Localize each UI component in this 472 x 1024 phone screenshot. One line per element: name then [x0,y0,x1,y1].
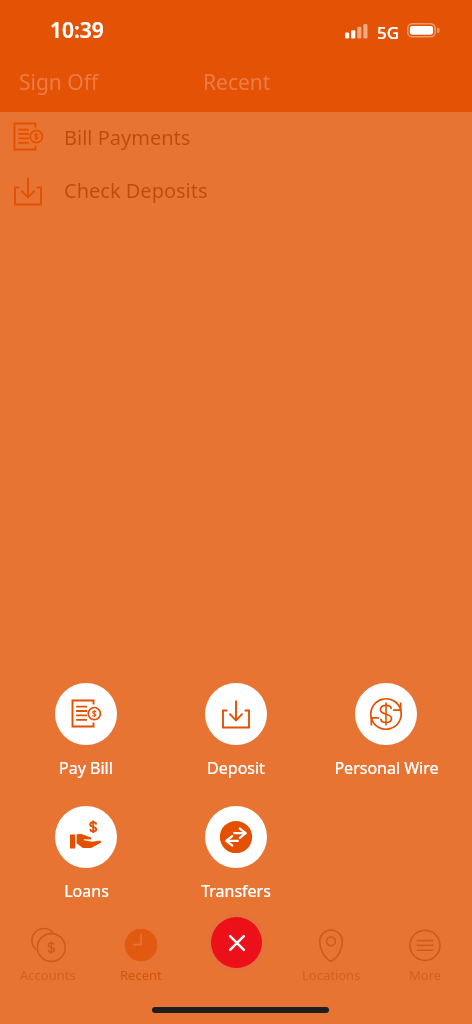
staticText: Check Deposits [64,177,208,204]
staticText: Personal Wire [334,757,439,779]
staticText: Loans [64,880,109,902]
button[interactable]: Personal Wire [311,683,461,779]
staticText: Bill Payments [64,124,191,151]
button[interactable]: Pay Bill [11,683,161,779]
staticText: 10:39 [50,16,104,45]
staticText: Transfers [201,880,271,902]
button[interactable]: Sign Off [0,62,160,102]
button[interactable]: Loans [11,806,161,902]
staticText: More [409,966,442,984]
button[interactable]: More [390,923,460,984]
staticText: Deposit [207,757,265,779]
staticText: Accounts [20,966,76,984]
staticText: Recent [203,68,271,97]
button[interactable]: Accounts [13,923,83,984]
button[interactable]: Locations [296,923,366,984]
staticText: Recent [120,966,162,984]
button[interactable]: Deposit [161,683,311,779]
button[interactable]: Check Deposits [0,164,472,217]
button[interactable]: Transfers [161,806,311,902]
button[interactable]: Bill Payments [0,111,472,164]
button[interactable]: Recent [106,923,176,984]
button[interactable]: Close menu [211,917,262,968]
staticText: Pay Bill [59,757,113,779]
staticText: Sign Off [19,68,99,97]
button[interactable]: Recent [180,62,340,102]
staticText: Locations [302,966,361,984]
staticText: 5G [377,21,400,44]
